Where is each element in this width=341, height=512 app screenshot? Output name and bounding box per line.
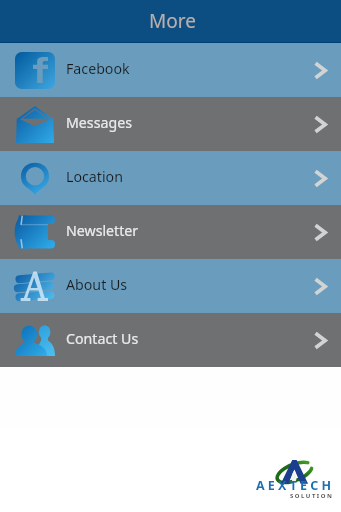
staticText: Messages (66, 113, 132, 132)
staticText: Location (66, 167, 123, 186)
button[interactable]: Messages (0, 97, 341, 151)
staticText: More (149, 8, 196, 34)
button[interactable]: Location (0, 151, 341, 205)
staticText: Newsletter (66, 221, 139, 240)
button[interactable]: About Us (0, 259, 341, 313)
button[interactable]: Contact Us (0, 313, 341, 367)
staticText: SOLUTION (290, 492, 334, 500)
staticText: Facebook (66, 59, 130, 78)
staticText: About Us (66, 275, 128, 294)
staticText: AEXTECH (256, 477, 335, 494)
button[interactable]: Facebook (0, 43, 341, 97)
staticText: Contact Us (66, 329, 139, 348)
button[interactable]: Newsletter (0, 205, 341, 259)
